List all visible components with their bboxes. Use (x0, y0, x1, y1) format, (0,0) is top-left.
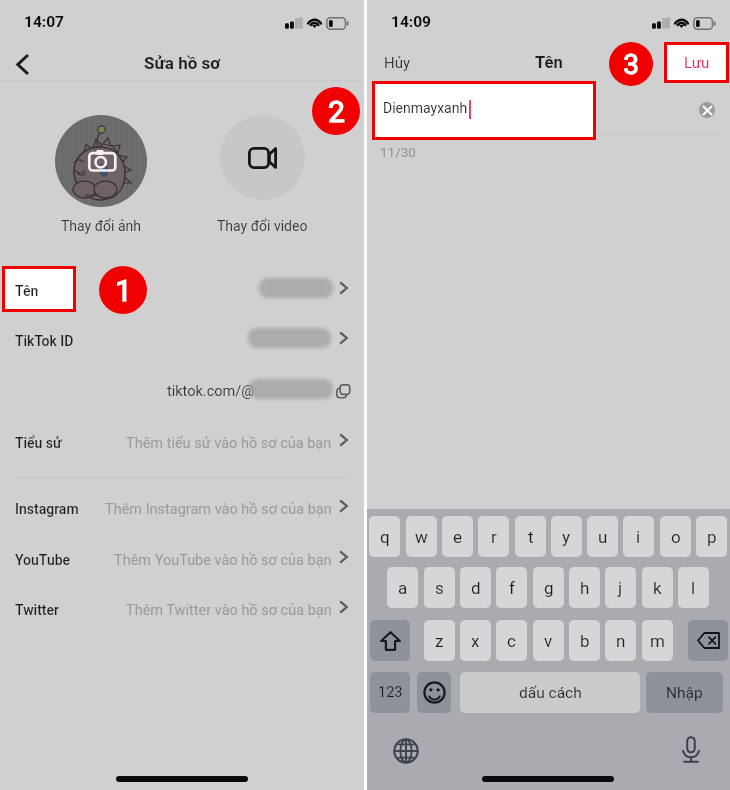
button[interactable]: s (424, 567, 455, 608)
staticText: a (398, 578, 408, 598)
staticText: 14:07 (24, 13, 64, 31)
button[interactable]: TikTok ID (0, 319, 363, 355)
staticText: 123 (378, 684, 403, 701)
button[interactable]: Hủy (373, 46, 421, 80)
button[interactable]: Tên (0, 269, 363, 305)
button[interactable]: i (623, 516, 654, 557)
staticText: b (580, 631, 590, 651)
staticText: d (471, 578, 481, 598)
button[interactable]: Lưu (664, 42, 729, 83)
button[interactable]: Change photo (55, 115, 147, 207)
staticText: o (671, 527, 681, 547)
staticText: Thêm Twitter vào hồ sơ của bạn (126, 602, 332, 619)
staticText: Tên (15, 283, 39, 299)
button[interactable]: Shift (370, 620, 410, 661)
button[interactable]: tiktok.com/@ (0, 378, 363, 404)
staticText: k (653, 578, 662, 598)
staticText: Thêm YouTube vào hồ sơ của bạn (114, 552, 332, 569)
staticText: Thay đổi video (217, 218, 308, 234)
button[interactable]: g (533, 567, 564, 608)
staticText: YouTube (15, 552, 71, 568)
staticText: 3 (623, 48, 639, 81)
button[interactable]: p (696, 516, 727, 557)
staticText: Nhập (666, 684, 703, 702)
staticText: f (509, 578, 515, 598)
staticText: z (435, 631, 444, 651)
staticText: Lưu (684, 54, 710, 72)
staticText: 1 (115, 273, 132, 308)
staticText: Tên (15, 283, 39, 299)
button[interactable]: Tiểu sử (0, 421, 363, 457)
staticText: 11/30 (380, 144, 416, 160)
button[interactable]: a (387, 567, 418, 608)
staticText: Thay đổi ảnh (61, 218, 141, 234)
button[interactable]: e (442, 516, 473, 557)
button[interactable]: dấu cách (460, 672, 640, 713)
button[interactable]: YouTube (0, 538, 363, 574)
button[interactable]: Backspace (688, 620, 728, 661)
staticText: Dienmayxanh (383, 100, 468, 116)
staticText: p (707, 527, 717, 547)
staticText: x (471, 631, 480, 651)
button[interactable]: r (478, 516, 509, 557)
button[interactable]: m (642, 620, 673, 661)
button[interactable]: d (460, 567, 491, 608)
staticText: u (598, 527, 608, 547)
button[interactable]: w (406, 516, 437, 557)
button[interactable]: h (569, 567, 600, 608)
staticText: m (650, 631, 665, 651)
staticText: l (691, 578, 696, 598)
button[interactable]: Back (6, 48, 38, 80)
staticText: Tên (535, 53, 563, 72)
button[interactable]: 123 (370, 672, 410, 713)
button[interactable]: n (605, 620, 636, 661)
button[interactable]: z (424, 620, 455, 661)
staticText: c (507, 631, 516, 651)
button[interactable]: Clear text (699, 102, 715, 118)
button[interactable]: Voice input (674, 733, 708, 767)
button[interactable]: j (605, 567, 636, 608)
staticText: Thêm tiểu sử vào hồ sơ của bạn (126, 435, 332, 452)
staticText: w (415, 527, 428, 547)
staticText: Twitter (15, 602, 59, 618)
staticText: i (636, 527, 641, 547)
staticText: y (562, 527, 571, 547)
button[interactable]: u (587, 516, 618, 557)
button[interactable]: q (369, 516, 400, 557)
staticText: Instagram (15, 501, 79, 517)
button[interactable]: Instagram (0, 487, 363, 523)
button[interactable]: x (460, 620, 491, 661)
staticText: Hủy (384, 54, 411, 72)
staticText: e (453, 527, 463, 547)
button[interactable]: Emoji (417, 672, 451, 713)
button[interactable]: v (533, 620, 564, 661)
button[interactable]: b (569, 620, 600, 661)
button[interactable]: l (678, 567, 709, 608)
staticText: Sửa hồ sơ (144, 53, 221, 73)
staticText: t (528, 527, 534, 547)
button[interactable]: Change keyboard language (389, 734, 423, 768)
staticText: j (618, 578, 623, 598)
staticText: n (616, 631, 626, 651)
staticText: v (544, 631, 553, 651)
button[interactable]: Nhập (646, 672, 723, 713)
button[interactable]: t (515, 516, 546, 557)
staticText: g (544, 578, 554, 598)
button[interactable]: k (642, 567, 673, 608)
staticText: s (435, 578, 444, 598)
staticText: Thêm Instagram vào hồ sơ của bạn (105, 501, 332, 518)
button[interactable]: Twitter (0, 588, 363, 624)
staticText: 2 (328, 94, 345, 129)
staticText: tiktok.com/@ (167, 383, 255, 400)
button[interactable]: o (660, 516, 691, 557)
staticText: Tiểu sử (15, 435, 62, 451)
staticText: h (580, 578, 590, 598)
staticText: TikTok ID (15, 333, 74, 349)
button[interactable]: Change video (220, 115, 305, 200)
staticText: q (380, 527, 390, 547)
button[interactable]: c (496, 620, 527, 661)
button[interactable]: f (496, 567, 527, 608)
button[interactable]: y (551, 516, 582, 557)
staticText: 14:09 (391, 13, 431, 31)
staticText: dấu cách (519, 684, 582, 702)
